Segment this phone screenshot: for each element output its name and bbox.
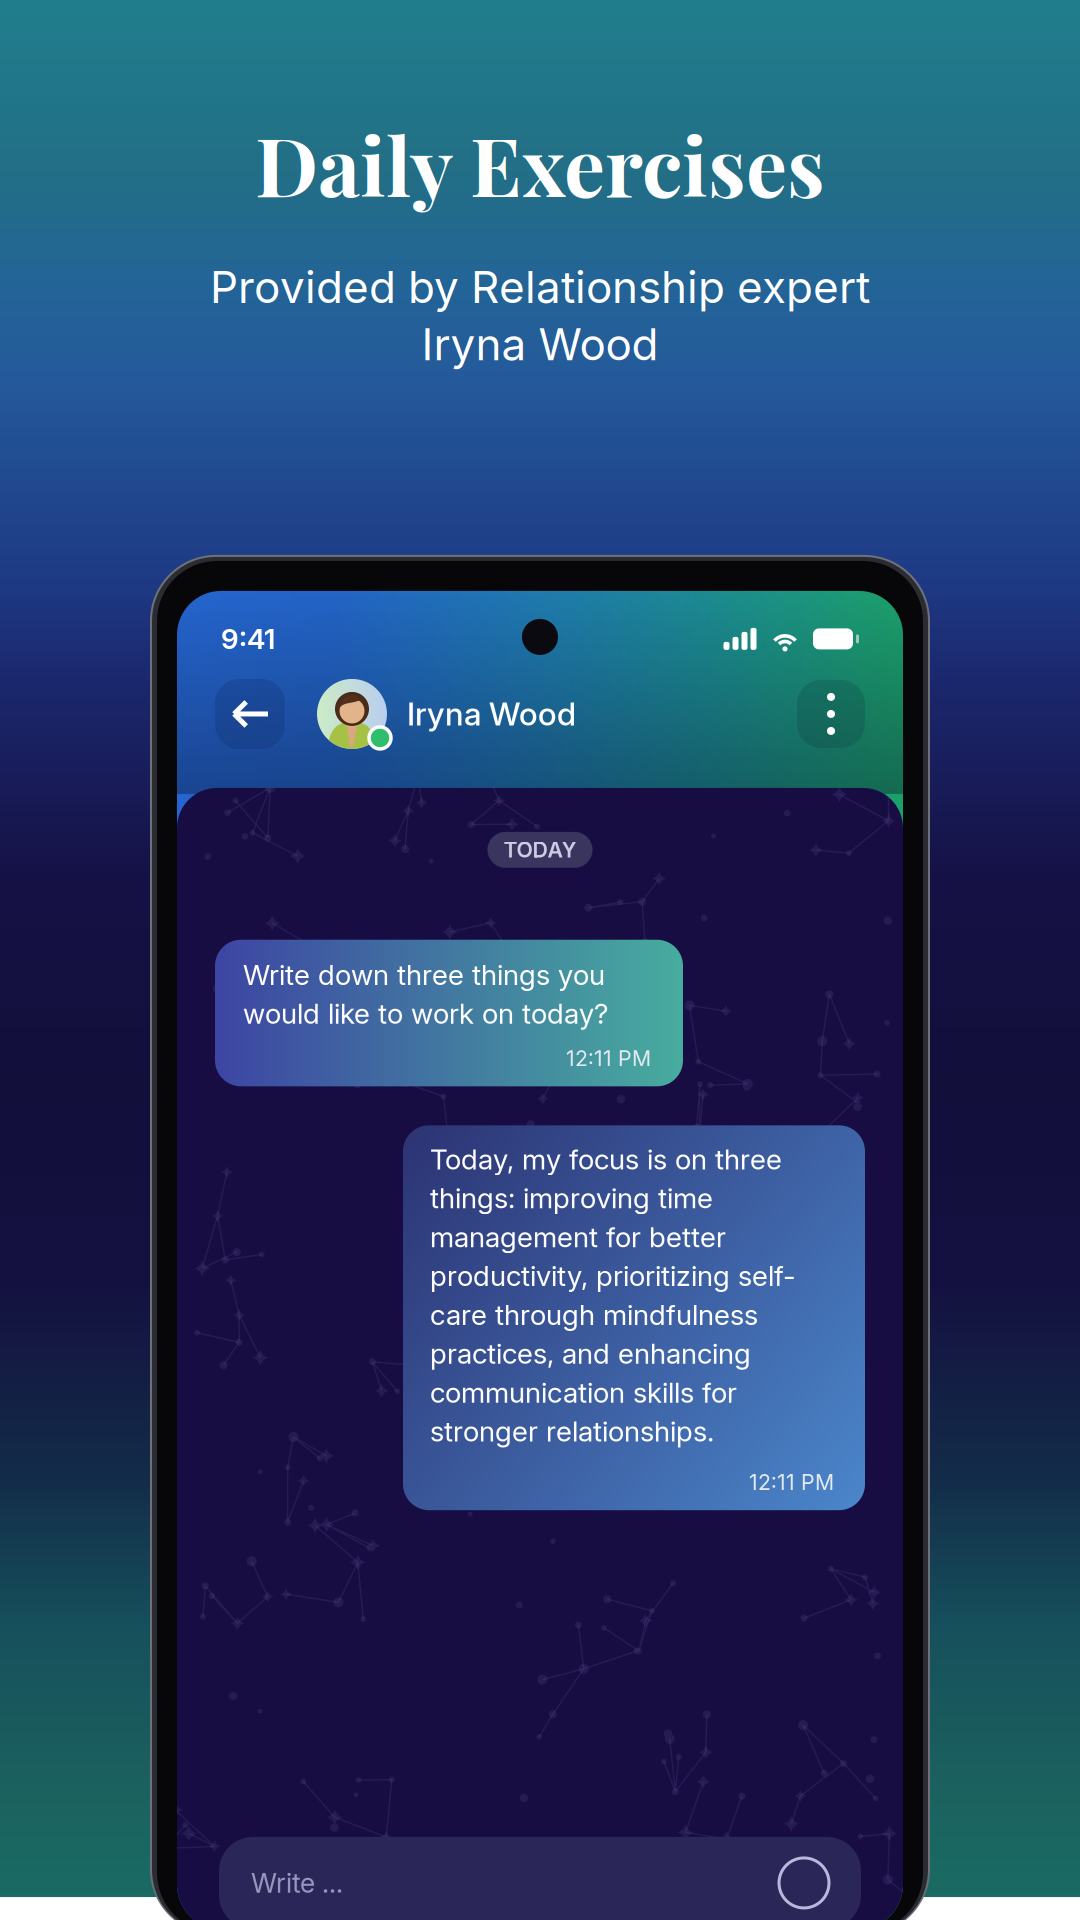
staticText: practices, and enhancing — [430, 1337, 751, 1371]
staticText: care through mindfulness — [430, 1298, 758, 1332]
staticText: communication skills for — [430, 1376, 737, 1409]
staticText: Iryna Wood — [421, 318, 658, 371]
button[interactable]: Back — [215, 679, 285, 749]
staticText: things: improving time — [430, 1181, 713, 1215]
staticText: stronger relationships. — [430, 1414, 714, 1448]
staticText: Today, my focus is on three — [430, 1142, 782, 1176]
staticText: productivity, prioritizing self- — [430, 1259, 796, 1293]
staticText: Write ... — [251, 1867, 343, 1899]
staticText: Write down three things you — [243, 958, 605, 992]
button[interactable]: More options — [797, 680, 865, 748]
staticText: TODAY — [503, 837, 576, 863]
staticText: Provided by Relationship expert — [210, 260, 870, 314]
staticText: 9:41 — [221, 622, 275, 656]
staticText: 12:11 PM — [566, 1045, 651, 1071]
staticText: would like to work on today? — [243, 997, 608, 1030]
staticText: 12:11 PM — [749, 1469, 834, 1495]
staticText: management for better — [430, 1220, 726, 1254]
staticText: Iryna Wood — [407, 695, 576, 733]
staticText: Daily Exercises — [255, 109, 825, 217]
